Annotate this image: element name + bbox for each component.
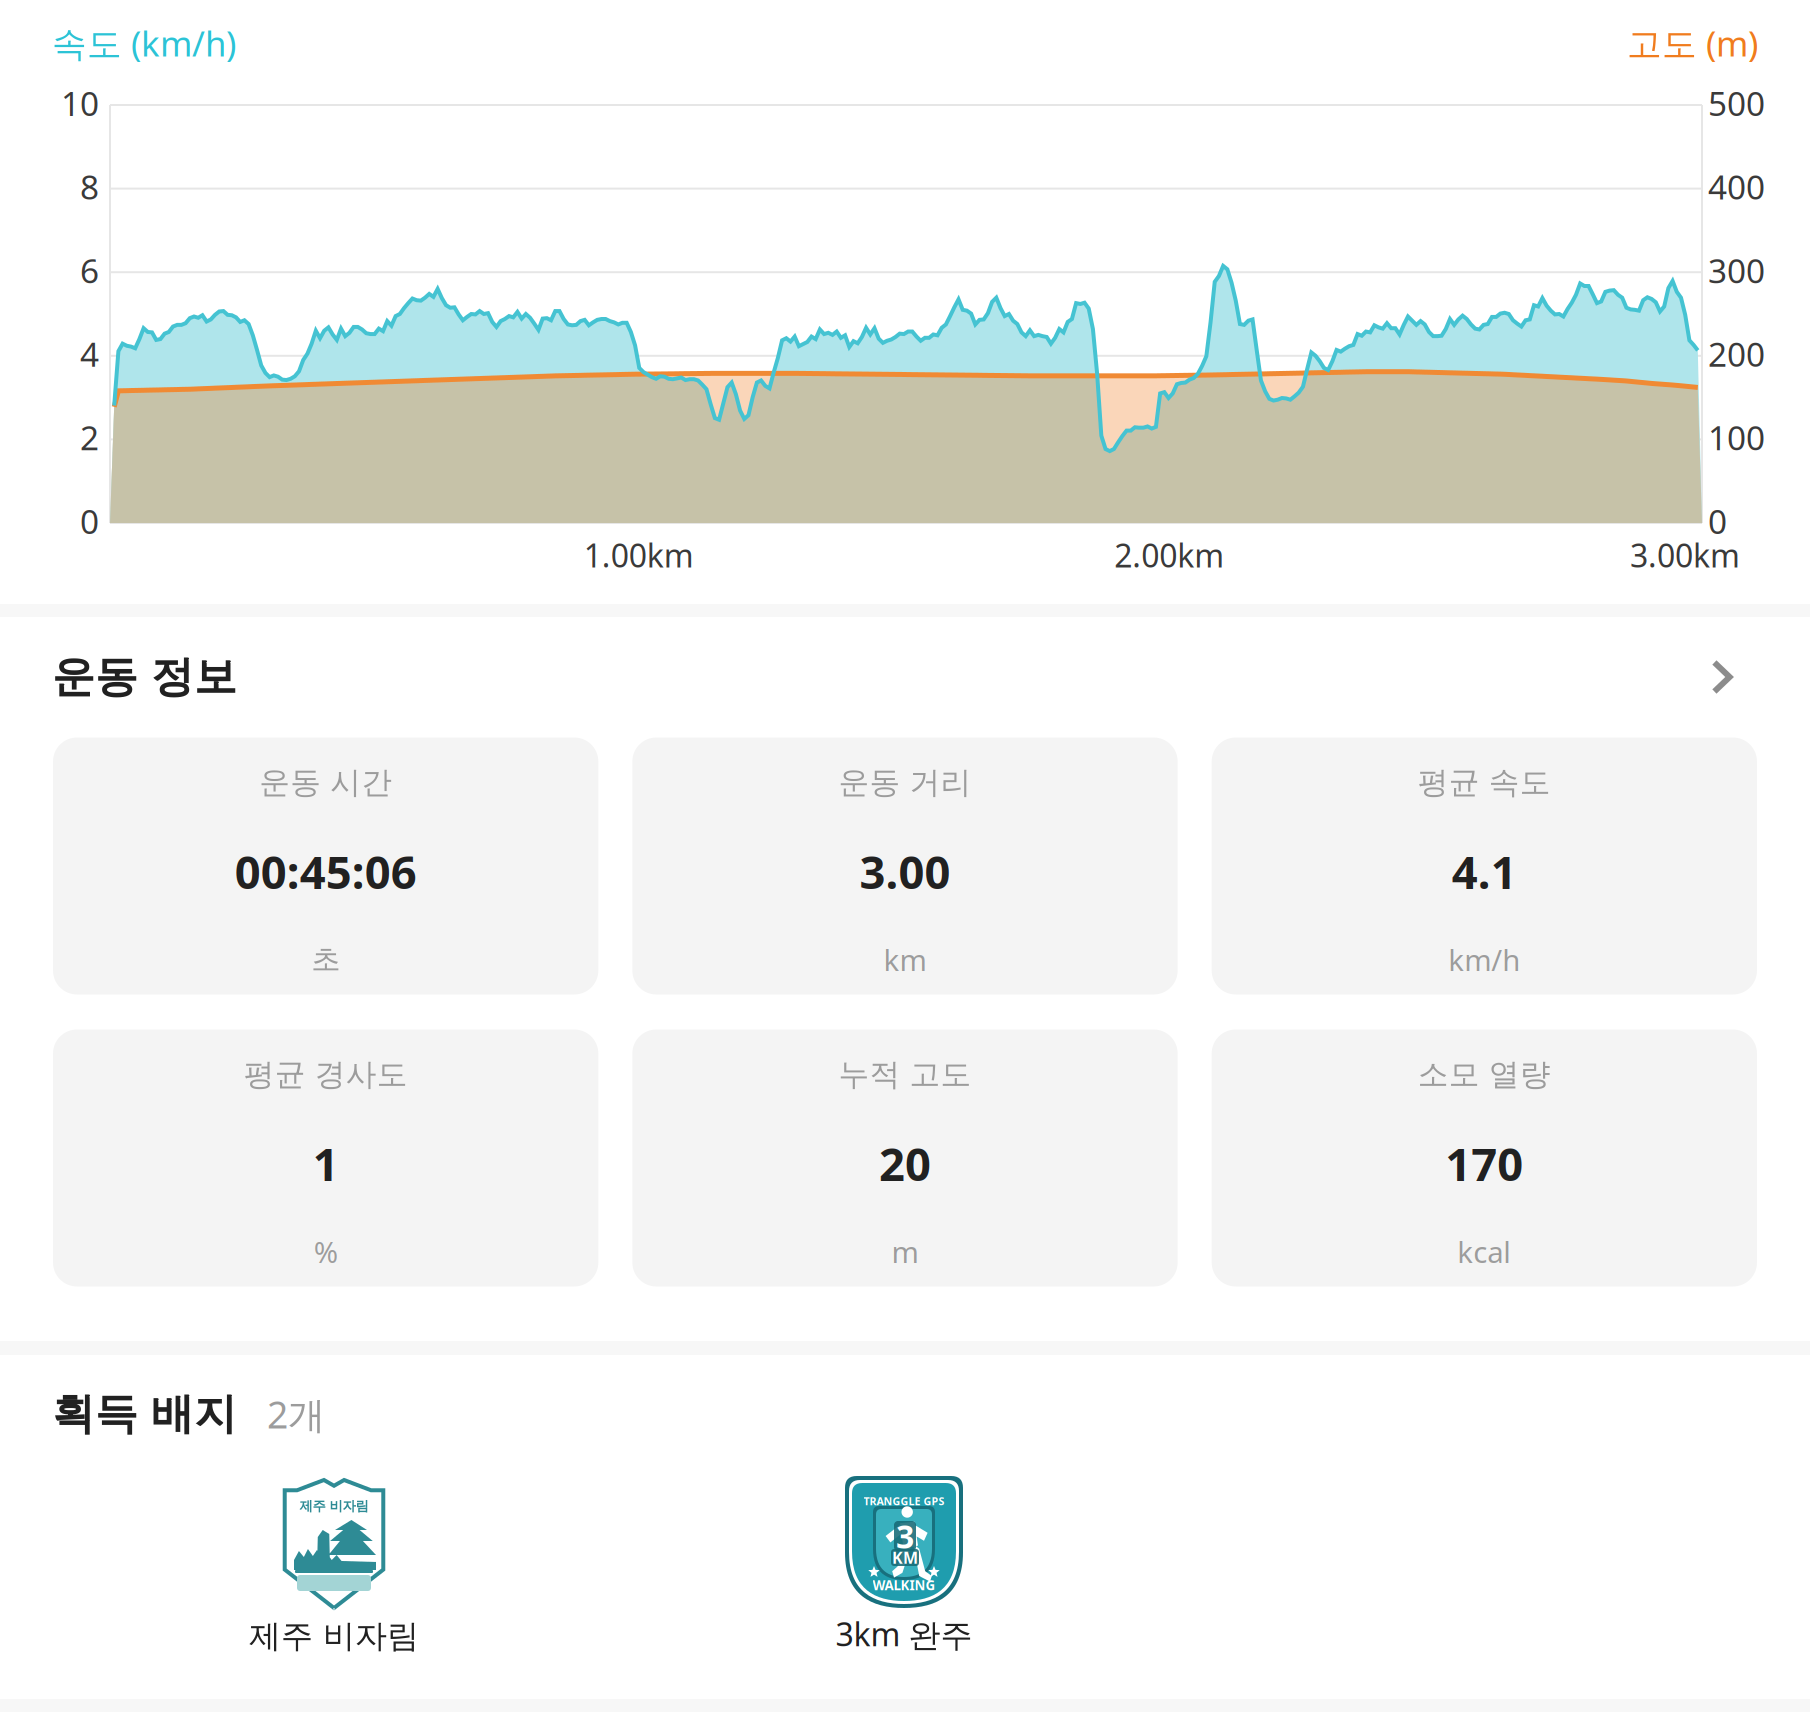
staticText: % — [314, 1232, 338, 1271]
staticText: 4.1 — [1452, 841, 1517, 902]
button[interactable]: TRANGGLE GPS — [734, 1474, 1074, 1658]
button[interactable]: 평균 경사도 — [53, 1029, 598, 1286]
staticText: 20 — [879, 1133, 931, 1194]
staticText: 속도 (km/h) — [52, 20, 236, 66]
staticText: 운동 정보 — [52, 651, 237, 703]
staticText: 0 — [1708, 499, 1727, 543]
staticText: 획득 배지 — [52, 1388, 237, 1440]
staticText: 1.00km — [584, 534, 694, 576]
staticText: 3.00km — [1630, 534, 1740, 576]
staticText: 00:45:06 — [235, 841, 417, 902]
staticText: 8 — [80, 164, 99, 209]
staticText: 3.00 — [859, 841, 950, 902]
staticText: 운동 시간 — [259, 764, 392, 801]
button[interactable]: 제주 비자림 — [164, 1477, 504, 1661]
button[interactable]: 운동 정보 — [0, 625, 1810, 729]
staticText: 평균 속도 — [1418, 764, 1551, 801]
staticText: 누적 고도 — [838, 1056, 971, 1093]
staticText: 2.00km — [1114, 534, 1224, 576]
staticText: km/h — [1448, 940, 1520, 979]
staticText: 운동 거리 — [838, 764, 971, 801]
staticText: 500 — [1708, 81, 1765, 125]
staticText: 초 — [311, 941, 340, 977]
staticText: TRANGGLE GPS — [863, 1494, 944, 1508]
button[interactable]: 운동 시간 — [53, 737, 598, 994]
staticText: 3km 완주 — [835, 1613, 972, 1655]
button[interactable]: 소모 열량 — [1212, 1029, 1757, 1286]
staticText: 0 — [80, 499, 99, 543]
staticText: 200 — [1708, 332, 1765, 376]
staticText: 4 — [80, 332, 99, 376]
staticText: 6 — [80, 248, 99, 292]
staticText: 170 — [1445, 1133, 1523, 1194]
staticText: 400 — [1708, 164, 1765, 209]
staticText: 평균 경사도 — [244, 1056, 408, 1093]
staticText: m — [891, 1232, 918, 1271]
staticText: 2개 — [237, 1389, 325, 1439]
staticText: WALKING — [872, 1576, 935, 1594]
staticText: km — [883, 940, 926, 979]
staticText: 소모 열량 — [1418, 1056, 1551, 1093]
staticText: 300 — [1708, 248, 1765, 292]
staticText: 1 — [313, 1133, 339, 1194]
staticText: 10 — [61, 81, 99, 125]
staticText: 3 — [896, 1515, 914, 1557]
staticText: 제주 비자림 — [299, 1498, 368, 1514]
staticText: 2 — [80, 415, 99, 460]
button[interactable]: 운동 거리 — [632, 737, 1178, 994]
staticText: 100 — [1708, 415, 1765, 460]
staticText: KM — [892, 1547, 918, 1568]
staticText: kcal — [1457, 1232, 1511, 1271]
button[interactable]: 평균 속도 — [1212, 737, 1757, 994]
staticText: 고도 (m) — [1627, 20, 1758, 66]
staticText: 제주 비자림 — [249, 1616, 419, 1656]
button[interactable]: 누적 고도 — [632, 1029, 1178, 1286]
